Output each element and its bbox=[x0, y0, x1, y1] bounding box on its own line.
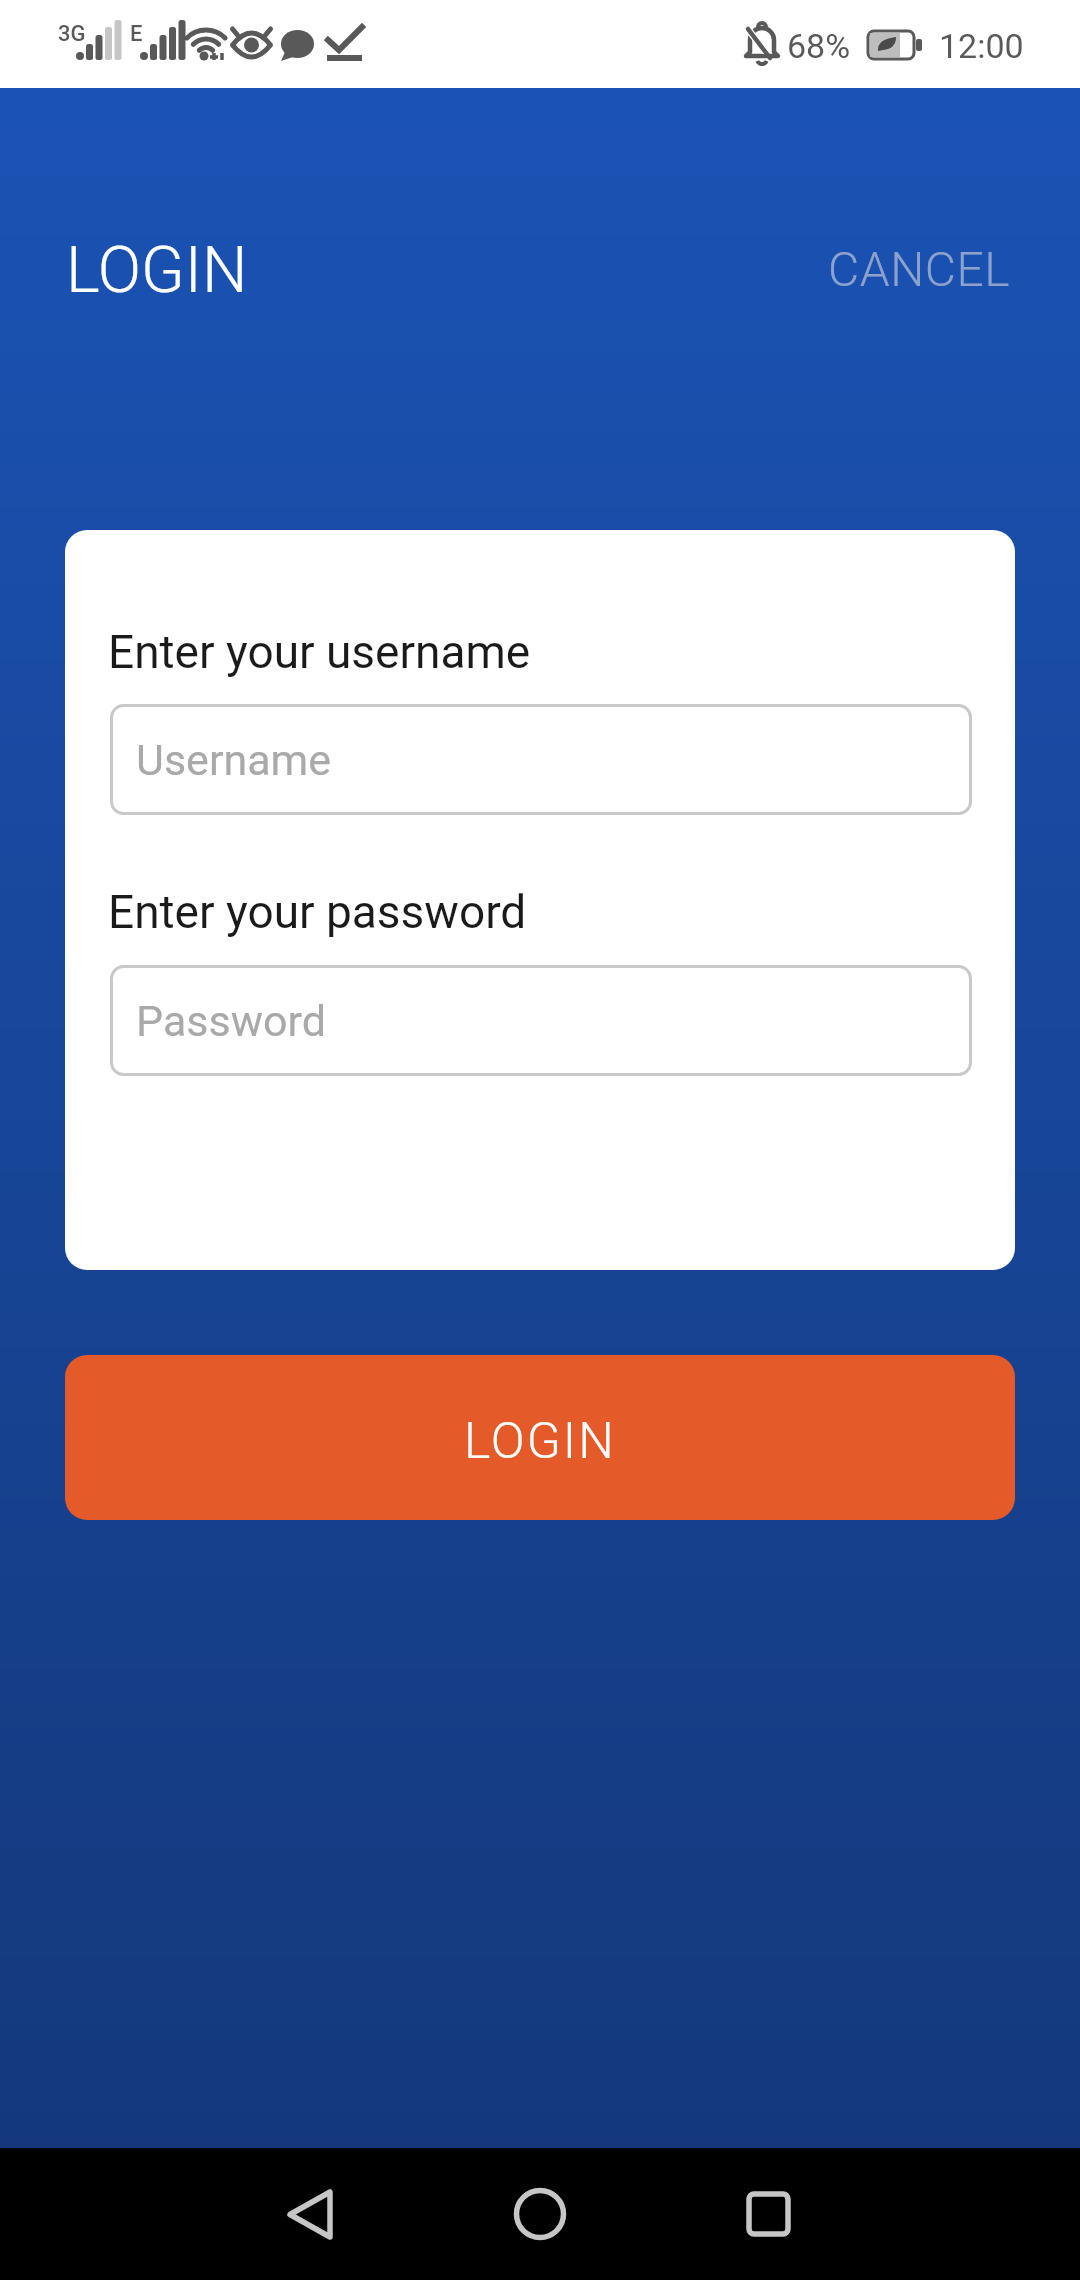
staticText: Password bbox=[136, 996, 326, 1046]
button[interactable] bbox=[230, 2148, 390, 2280]
staticText: CANCEL bbox=[828, 241, 1011, 297]
button[interactable]: LOGIN bbox=[65, 1355, 1015, 1520]
button[interactable]: CANCEL bbox=[828, 241, 1011, 297]
staticText: Username bbox=[136, 735, 332, 785]
staticText: E bbox=[130, 21, 143, 47]
button[interactable] bbox=[688, 2148, 848, 2280]
staticText: 68% bbox=[787, 26, 851, 66]
staticText: LOGIN bbox=[66, 233, 248, 308]
staticText: 3G bbox=[58, 21, 86, 47]
button[interactable] bbox=[460, 2148, 620, 2280]
button[interactable]: Password bbox=[110, 965, 972, 1076]
staticText: Enter your username bbox=[108, 625, 531, 679]
staticText: Enter your password bbox=[108, 885, 527, 939]
staticText: 12:00 bbox=[939, 26, 1024, 66]
button[interactable]: Username bbox=[110, 704, 972, 815]
staticText: LOGIN bbox=[464, 1412, 616, 1471]
